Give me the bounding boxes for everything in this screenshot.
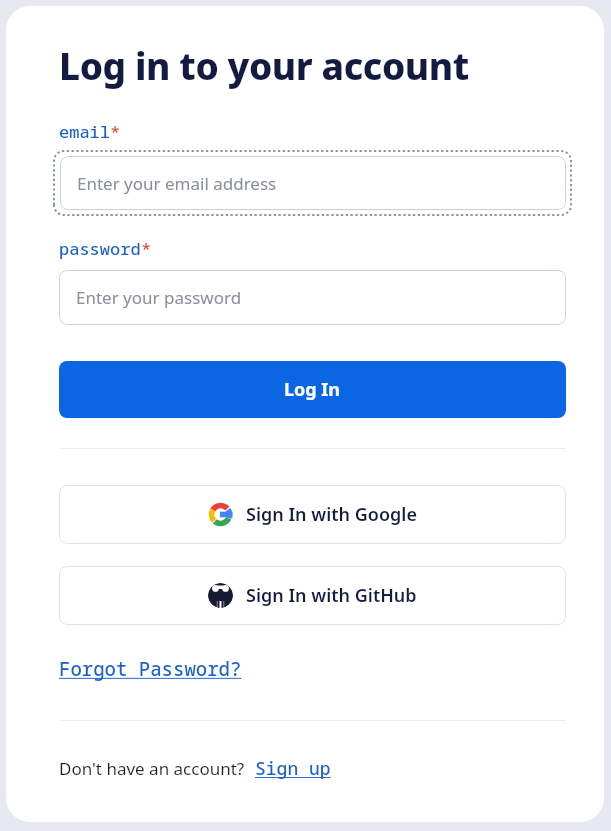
staticText: *	[110, 120, 121, 143]
staticText: Log in to your account	[59, 40, 469, 90]
button[interactable]: Enter your email address	[60, 156, 566, 210]
staticText: Don't have an account?	[59, 757, 245, 780]
staticText: password	[59, 237, 141, 260]
button[interactable]: Sign up	[255, 756, 331, 781]
staticText: Forgot Password?	[59, 656, 242, 682]
staticText: Sign up	[255, 756, 331, 781]
staticText: Sign In with Google	[246, 502, 417, 527]
other: GitHub	[208, 583, 233, 608]
staticText: *	[141, 237, 152, 260]
staticText: Enter your password	[76, 286, 242, 309]
button[interactable]: Google	[59, 485, 566, 544]
button[interactable]: GitHub	[59, 566, 566, 625]
staticText: Sign In with GitHub	[246, 583, 417, 608]
other: Google	[208, 502, 233, 527]
staticText: Enter your email address	[77, 172, 277, 195]
button[interactable]: Log In	[59, 361, 566, 418]
staticText: email	[59, 120, 110, 143]
staticText: Log In	[284, 377, 341, 402]
button[interactable]: Forgot Password?	[59, 656, 242, 682]
button[interactable]: Enter your password	[59, 270, 566, 325]
